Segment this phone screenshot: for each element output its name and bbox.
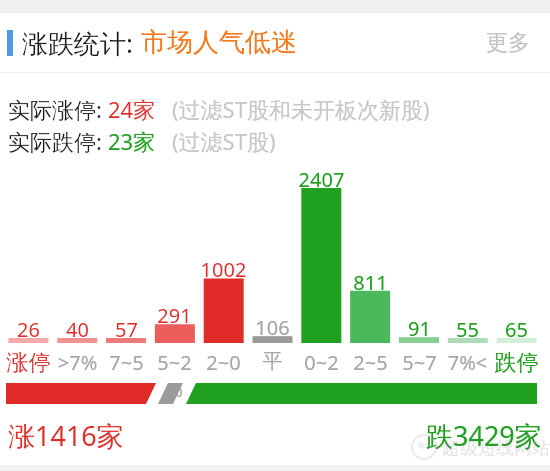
button[interactable]: 0~2%	[297, 349, 346, 403]
button[interactable]: 7~5%	[102, 349, 151, 403]
button[interactable]: 2~5%	[346, 349, 395, 403]
staticText: 2407	[297, 166, 346, 193]
staticText: 超级短线网站	[442, 437, 550, 460]
staticText: (过滤ST股)	[172, 126, 276, 156]
staticText: 65	[492, 316, 541, 343]
staticText: 实际涨停:	[8, 94, 102, 124]
staticText: 涨停	[4, 349, 53, 377]
button[interactable]: 7%<	[443, 349, 492, 376]
button[interactable]: 5~2%	[150, 349, 199, 403]
staticText: 涨1416家	[8, 417, 124, 454]
staticText: 291	[150, 302, 199, 329]
staticText: 23家	[108, 126, 156, 156]
staticText: 40	[53, 316, 102, 343]
staticText: 2~0%	[199, 349, 248, 403]
staticText: 市场人气低迷	[141, 26, 297, 59]
staticText: 1002	[199, 256, 248, 283]
staticText: 跌停	[492, 349, 541, 377]
staticText: 811	[346, 269, 395, 296]
staticText: 91	[395, 315, 444, 342]
staticText: 实际跌停:	[8, 126, 102, 156]
staticText: 55	[443, 316, 492, 343]
staticText: 5~7%	[395, 349, 444, 403]
button[interactable]: 涨停	[4, 349, 53, 377]
button[interactable]: 更多	[476, 21, 540, 65]
staticText: >7%	[53, 349, 102, 376]
staticText: 涨跌统计:	[22, 25, 133, 61]
button[interactable]: >7%	[53, 349, 102, 376]
staticText: 7~5%	[102, 349, 151, 403]
staticText: 26	[4, 316, 53, 343]
button[interactable]: 跌停	[492, 349, 541, 377]
staticText: 跌3429家	[426, 417, 542, 454]
staticText: 更多	[486, 29, 530, 57]
other: 涨跌家数比例	[0, 383, 550, 404]
staticText: 24家	[108, 94, 156, 124]
button[interactable]: 跌3429家	[426, 417, 542, 454]
button[interactable]: 涨跌统计:	[0, 13, 550, 72]
staticText: 2~5%	[346, 349, 395, 403]
staticText: 7%<	[443, 349, 492, 376]
button[interactable]: 5~7%	[395, 349, 444, 403]
staticText: 57	[102, 316, 151, 343]
staticText: 平	[248, 349, 297, 374]
staticText: (过滤ST股和未开板次新股)	[172, 94, 430, 124]
staticText: 0~2%	[297, 349, 346, 403]
button[interactable]: 涨1416家	[8, 417, 124, 454]
staticText: 106	[248, 314, 297, 341]
button[interactable]: 平	[248, 349, 297, 374]
staticText: 5~2%	[150, 349, 199, 403]
button[interactable]: 2~0%	[199, 349, 248, 403]
